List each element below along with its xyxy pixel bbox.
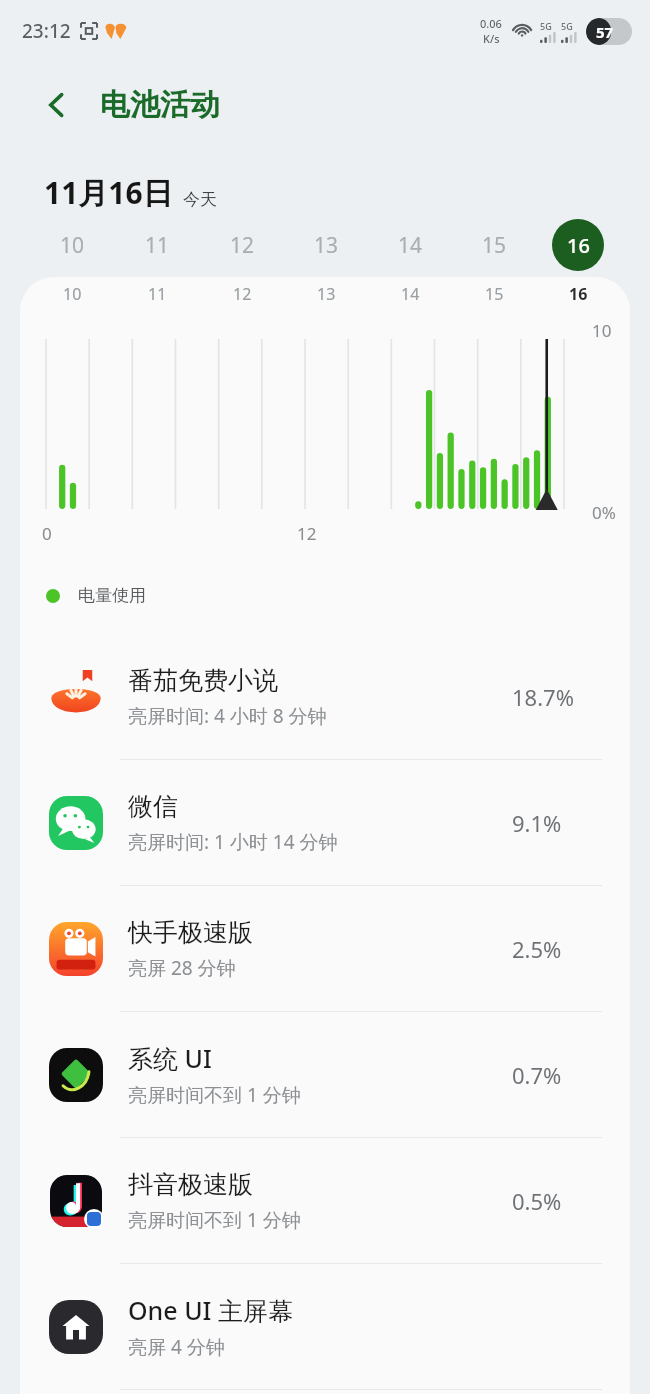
staticText: 亮屏 28 分钟 (128, 955, 236, 981)
staticText: 11 (145, 231, 170, 260)
staticText: 10 (63, 283, 82, 305)
staticText: 23:12 (22, 18, 71, 44)
staticText: 11 (148, 283, 167, 305)
button[interactable]: 16 (536, 213, 620, 277)
button[interactable]: 14 (368, 213, 452, 277)
button[interactable]: 15 (452, 213, 536, 277)
staticText: 14 (398, 231, 423, 260)
staticText: 微信 (128, 791, 178, 822)
staticText: 16 (569, 283, 588, 305)
staticText: 0.5% (512, 1186, 602, 1216)
staticText: 13 (314, 231, 339, 260)
staticText: 11月16日 (44, 172, 173, 213)
staticText: 9.1% (512, 808, 602, 838)
staticText: 电量使用 (78, 585, 146, 606)
staticText: 亮屏 4 分钟 (128, 1334, 225, 1360)
staticText: 12 (297, 522, 317, 545)
staticText: 电池活动 (100, 86, 220, 124)
staticText: 13 (317, 283, 336, 305)
button[interactable]: 微信 (20, 760, 630, 885)
staticText: 亮屏时间: 4 小时 8 分钟 (128, 703, 327, 729)
staticText: 2.5% (512, 934, 602, 964)
staticText: 番茄免费小说 (128, 665, 278, 696)
button[interactable]: 10 (30, 213, 115, 277)
staticText: 0.06 (480, 16, 502, 31)
staticText: 16 (567, 232, 590, 259)
button[interactable]: Back (34, 82, 80, 128)
staticText: One UI 主屏幕 (128, 1293, 293, 1327)
staticText: 14 (401, 283, 420, 305)
staticText: 0 (42, 522, 52, 545)
staticText: 今天 (183, 189, 217, 210)
button[interactable]: 系统 UI (20, 1012, 630, 1137)
button[interactable]: 11 (115, 213, 200, 277)
staticText: 12 (233, 283, 252, 305)
staticText: 15 (482, 231, 507, 260)
staticText: 10 (592, 319, 612, 342)
staticText: 亮屏时间: 1 小时 14 分钟 (128, 829, 338, 855)
button[interactable]: 12 (200, 213, 284, 277)
staticText: 亮屏时间不到 1 分钟 (128, 1207, 301, 1233)
staticText: 亮屏时间不到 1 分钟 (128, 1082, 301, 1108)
staticText: 10 (60, 231, 85, 260)
staticText: 12 (230, 231, 255, 260)
staticText: K/s (483, 31, 500, 46)
staticText: 15 (485, 283, 504, 305)
button[interactable]: 抖音极速版 (20, 1138, 630, 1263)
staticText: 系统 UI (128, 1041, 212, 1075)
staticText: 抖音极速版 (128, 1169, 253, 1200)
staticText: 5G (540, 20, 552, 32)
button[interactable]: One UI 主屏幕 (20, 1264, 630, 1389)
staticText: 57 (596, 22, 614, 42)
staticText: 0.7% (512, 1060, 602, 1090)
staticText: 5G (561, 20, 573, 32)
staticText: 快手极速版 (128, 917, 253, 948)
staticText: 18.7% (512, 682, 602, 712)
button[interactable]: 13 (284, 213, 368, 277)
button[interactable]: 番茄免费小说 (20, 634, 630, 759)
button[interactable]: 快手极速版 (20, 886, 630, 1011)
staticText: 0% (592, 501, 616, 524)
